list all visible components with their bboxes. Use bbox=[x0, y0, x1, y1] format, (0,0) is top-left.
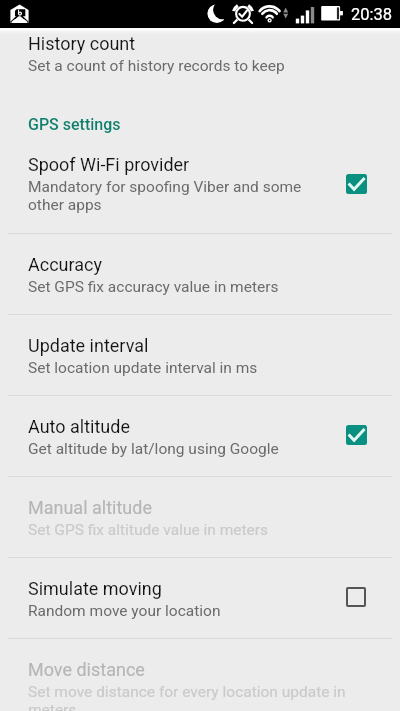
staticText: Update interval bbox=[28, 335, 149, 356]
staticText: Random move your location bbox=[28, 602, 221, 620]
staticText: Spoof Wi-Fi provider bbox=[28, 154, 190, 175]
staticText: Auto altitude bbox=[28, 416, 130, 437]
button[interactable]: Update interval bbox=[0, 314, 400, 395]
button[interactable]: Move distance bbox=[0, 638, 400, 711]
staticText: History count bbox=[28, 33, 136, 54]
button[interactable]: Spoof Wi-Fi provider bbox=[0, 135, 400, 234]
staticText: Accuracy bbox=[28, 254, 102, 275]
staticText: Move distance bbox=[28, 659, 145, 680]
button[interactable]: Simulate moving bbox=[0, 557, 400, 638]
staticText: Simulate moving bbox=[28, 578, 162, 599]
staticText: Set GPS fix altitude value in meters bbox=[28, 521, 269, 539]
staticText: Set a count of history records to keep bbox=[28, 57, 285, 75]
staticText: Manual altitude bbox=[28, 497, 152, 518]
staticText: Get altitude by lat/long using Google bbox=[28, 440, 279, 458]
button[interactable]: Simulate moving, not checked bbox=[338, 579, 374, 615]
button[interactable]: History count bbox=[0, 12, 400, 93]
staticText: Set location update interval in ms bbox=[28, 359, 258, 377]
button[interactable]: Spoof Wi-Fi provider, checked bbox=[338, 166, 374, 202]
button[interactable]: Auto altitude, checked bbox=[338, 417, 374, 453]
staticText: 20:38 bbox=[351, 5, 393, 24]
staticText: GPS settings bbox=[28, 115, 121, 134]
staticText: Mandatory for spoofing Viber and some ot… bbox=[28, 178, 331, 214]
button[interactable]: Auto altitude bbox=[0, 395, 400, 476]
staticText: Set GPS fix accuracy value in meters bbox=[28, 278, 279, 296]
staticText: Set move distance for every location upd… bbox=[28, 683, 353, 711]
button[interactable]: Manual altitude bbox=[0, 476, 400, 557]
button[interactable]: Accuracy bbox=[0, 233, 400, 314]
